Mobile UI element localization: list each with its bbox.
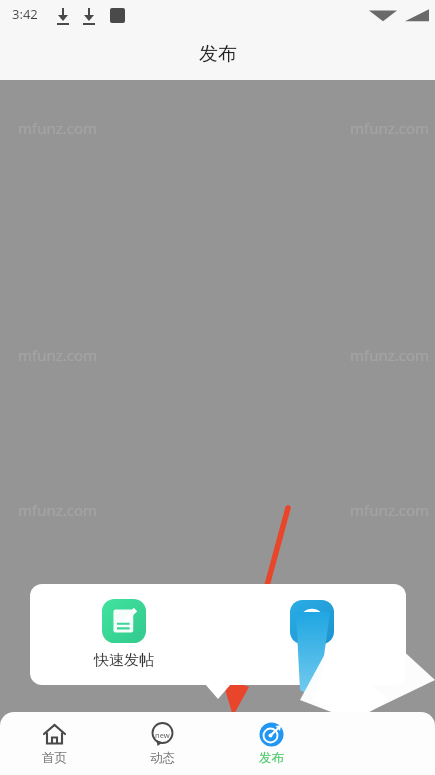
staticText: 首页 xyxy=(42,750,67,766)
staticText: 动态 xyxy=(150,750,175,766)
staticText: mfunz.com xyxy=(350,500,430,520)
staticText: 快速发帖 xyxy=(94,651,154,670)
staticText: mfunz.com xyxy=(350,118,430,138)
button[interactable]: 快速发帖 xyxy=(30,584,218,685)
staticText: 发布 xyxy=(259,750,284,766)
staticText: new xyxy=(155,730,170,740)
button[interactable]: 首页 xyxy=(0,712,108,775)
staticText: mfunz.com xyxy=(18,345,98,365)
staticText: 3:42 xyxy=(12,5,38,23)
staticText: mfunz.com xyxy=(18,500,98,520)
staticText: 发布 xyxy=(199,42,237,66)
button[interactable]: new xyxy=(108,712,217,775)
button[interactable]: 发布选项 xyxy=(218,584,406,685)
staticText: mfunz.com xyxy=(350,345,430,365)
button[interactable]: 发布 xyxy=(217,712,326,775)
staticText: mfunz.com xyxy=(18,118,98,138)
